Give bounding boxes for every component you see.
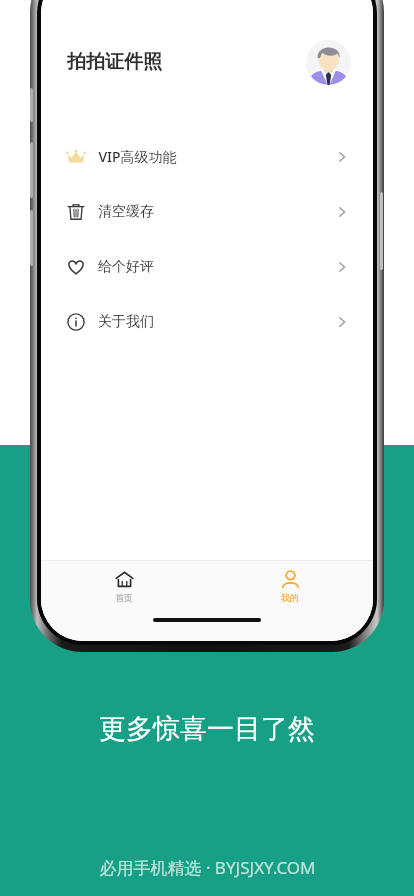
button[interactable]: VIP高级功能: [41, 129, 373, 184]
button[interactable]: 用户头像: [306, 40, 351, 85]
button[interactable]: 首页: [41, 561, 207, 611]
staticText: 给个好评: [98, 258, 154, 276]
staticText: 必用手机精选 · BYJSJXY.COM: [99, 856, 316, 879]
staticText: 清空缓存: [98, 203, 154, 221]
staticText: 首页: [115, 592, 133, 603]
button[interactable]: 给个好评: [41, 239, 373, 294]
staticText: VIP高级功能: [98, 147, 177, 166]
button[interactable]: 清空缓存: [41, 184, 373, 239]
staticText: 关于我们: [98, 313, 154, 331]
staticText: 拍拍证件照: [67, 50, 162, 74]
staticText: 我的: [281, 592, 299, 603]
button[interactable]: 关于我们: [41, 294, 373, 349]
button[interactable]: 我的: [207, 561, 373, 611]
staticText: 更多惊喜一目了然: [99, 712, 315, 746]
